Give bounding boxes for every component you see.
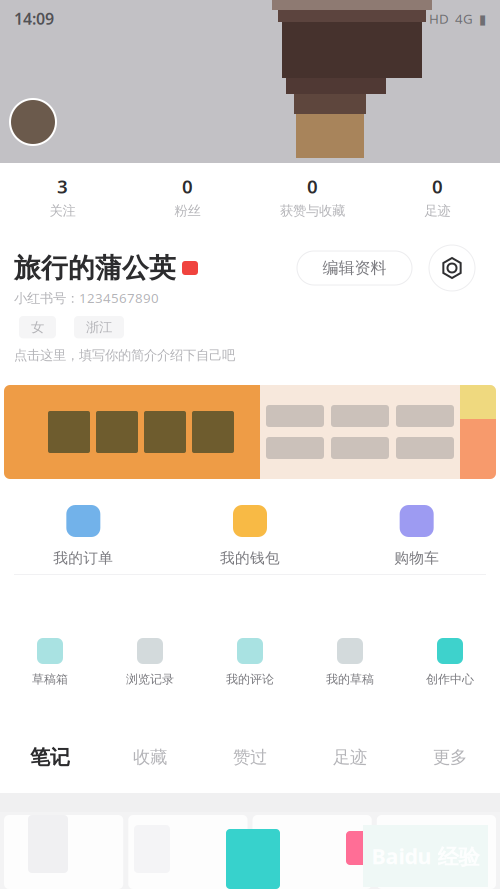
staticText: 粉丝 <box>174 203 200 219</box>
button[interactable]: 女 <box>19 316 56 338</box>
staticText: 小红书号：1234567890 <box>14 289 159 307</box>
staticText: 浏览记录 <box>126 672 174 687</box>
staticText: HD 4G ▮ <box>429 10 486 27</box>
button[interactable]: 0 <box>375 174 500 219</box>
staticText: 我的订单 <box>53 549 113 567</box>
staticText: 收藏 <box>133 747 167 768</box>
staticText: 草稿箱 <box>32 672 68 687</box>
button[interactable]: 购物车 <box>333 505 500 567</box>
staticText: 获赞与收藏 <box>280 203 345 219</box>
button[interactable] <box>4 815 123 889</box>
button[interactable]: Profile photo <box>10 99 56 145</box>
button[interactable]: 收藏 <box>100 747 200 768</box>
button[interactable]: 我的评论 <box>200 638 300 687</box>
staticText: 编辑资料 <box>322 258 386 278</box>
staticText: 关注 <box>49 203 75 219</box>
button[interactable]: 草稿箱 <box>0 638 100 687</box>
staticText: 更多 <box>433 747 467 768</box>
button[interactable]: 3 <box>0 174 125 219</box>
button[interactable]: 创作中心 <box>400 638 500 687</box>
button[interactable]: 赞过 <box>200 747 300 768</box>
button[interactable]: Settings <box>429 245 475 291</box>
button[interactable]: 编辑资料 <box>297 251 412 285</box>
button[interactable] <box>128 815 247 889</box>
staticText: 足迹 <box>333 747 367 768</box>
staticText: 笔记 <box>30 745 70 770</box>
staticText: 14:09 <box>14 8 54 29</box>
button[interactable]: 浏览记录 <box>100 638 200 687</box>
button[interactable]: 0 <box>250 174 375 219</box>
staticText: 创作中心 <box>426 672 474 687</box>
button[interactable]: 浙江 <box>74 316 124 338</box>
staticText: 0 <box>182 174 193 199</box>
staticText: 女 <box>31 319 44 335</box>
button[interactable] <box>252 815 372 889</box>
button[interactable]: 足迹 <box>300 747 400 768</box>
staticText: 足迹 <box>424 203 450 219</box>
button[interactable] <box>0 385 500 479</box>
button[interactable]: 0 <box>125 174 250 219</box>
staticText: 0 <box>307 174 318 199</box>
staticText: 0 <box>432 174 443 199</box>
staticText: 我的草稿 <box>326 672 374 687</box>
button[interactable]: 更多 <box>400 747 500 768</box>
staticText: 购物车 <box>394 549 439 567</box>
staticText: Baidu 经验 <box>371 842 479 870</box>
button[interactable]: 我的草稿 <box>300 638 400 687</box>
staticText: 浙江 <box>86 319 112 335</box>
staticText: 旅行的蒲公英 <box>14 252 176 284</box>
staticText: 我的钱包 <box>220 549 280 567</box>
staticText: 我的评论 <box>226 672 274 687</box>
button[interactable] <box>377 815 496 889</box>
staticText: 点击这里，填写你的简介介绍下自己吧 <box>14 347 235 363</box>
staticText: 赞过 <box>233 747 267 768</box>
button[interactable]: 笔记 <box>0 745 100 770</box>
button[interactable]: 我的钱包 <box>167 505 333 567</box>
button[interactable]: 我的订单 <box>0 505 167 567</box>
staticText: 3 <box>57 174 68 199</box>
